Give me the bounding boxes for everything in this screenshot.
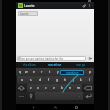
button[interactable]: b [58,84,66,92]
button[interactable]: w [23,68,30,76]
button[interactable]: ?123 [16,92,27,100]
staticText: s [30,78,32,82]
staticText: t [49,70,51,74]
button[interactable]: When are we starting training for the [17,56,86,61]
button[interactable]: c [42,84,50,92]
button[interactable]: mar go [68,62,94,68]
button[interactable]: d [35,76,44,84]
staticText: u [65,70,67,74]
button[interactable]: l [85,76,93,84]
button[interactable]: s [26,76,35,84]
staticText: marathon [48,63,62,67]
button[interactable]: o [78,68,86,76]
staticText: c [45,86,47,90]
staticText: g [56,78,58,82]
button[interactable]: Recent apps [73,104,80,110]
button[interactable]: Home [52,104,59,110]
staticText: l [89,78,90,82]
button[interactable]: h [61,76,69,84]
staticText: k [80,78,82,82]
button[interactable]: Delete [82,84,94,92]
button[interactable]: . [75,92,83,100]
staticText: a [21,78,23,82]
button[interactable]: Back [30,104,37,110]
staticText: o [81,70,83,74]
button[interactable]: marathon [42,62,68,68]
button[interactable]: u [62,68,70,76]
button[interactable]: Voice input [27,92,35,100]
staticText: m [77,86,80,90]
staticText: v [53,86,55,90]
button[interactable]: t [46,68,54,76]
staticText: z [30,86,32,90]
staticText: . [79,95,80,98]
button[interactable]: More options [87,3,92,8]
button[interactable]: App icon, navigate up [18,3,23,8]
button[interactable]: p [86,68,94,76]
staticText: mar go [76,63,86,67]
button[interactable]: i [70,68,78,76]
button[interactable]: Attach [81,3,87,9]
button[interactable]: y [54,68,62,76]
staticText: Laurie [20,12,29,16]
button[interactable]: f [44,76,53,84]
staticText: x [37,86,39,90]
staticText: y [57,70,59,74]
button[interactable]: a [17,76,26,84]
staticText: ?123 [19,95,24,98]
staticText: Laurie [24,3,81,8]
staticText: h [64,78,66,82]
staticText: r [41,70,43,74]
staticText: When are we starting training for the [18,57,64,61]
button[interactable]: m [74,84,82,92]
button[interactable]: Laurie [18,11,38,16]
button[interactable]: k [77,76,85,84]
staticText: marathon [66,71,79,75]
staticText: j [73,78,74,82]
staticText: q [19,70,21,74]
staticText: w [25,70,28,74]
button[interactable]: n [66,84,74,92]
staticText: the album [23,63,36,67]
staticText: i [74,70,75,74]
staticText: b [61,86,63,90]
staticText: d [39,78,41,82]
button[interactable]: Enter [83,92,94,100]
button[interactable]: j [69,76,77,84]
staticText: e [33,70,35,74]
button[interactable]: z [27,84,34,92]
button[interactable]: Shift [16,84,27,92]
staticText: n [69,86,71,90]
staticText: p [89,70,91,74]
button[interactable]: r [38,68,46,76]
button[interactable]: e [30,68,38,76]
button[interactable] [35,92,75,100]
staticText: f [48,78,50,82]
button[interactable]: the album [16,62,42,68]
button[interactable]: g [53,76,61,84]
button[interactable]: Send [87,56,93,61]
button[interactable]: v [50,84,58,92]
button[interactable]: q [16,68,23,76]
button[interactable]: x [34,84,42,92]
